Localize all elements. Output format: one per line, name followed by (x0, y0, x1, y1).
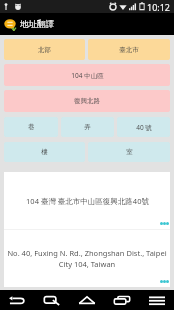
button[interactable]: 北部 (4, 39, 85, 60)
staticText: 復興北路 (74, 97, 100, 105)
button[interactable]: 室 (88, 142, 170, 162)
button[interactable]: 巷 (4, 117, 58, 137)
staticText: 104 臺灣 臺北市中山區復興北路40號 (26, 196, 149, 206)
button[interactable]: 104 中山區 (4, 64, 170, 86)
button[interactable]: No. 40, Fuxing N. Rd., Zhongshan Dist., … (4, 230, 170, 287)
staticText: 北部 (38, 46, 51, 54)
staticText: 弄 (84, 123, 91, 131)
button[interactable]: 104 臺灣 臺北市中山區復興北路40號 (4, 172, 170, 229)
button[interactable]: 復興北路 (4, 90, 170, 112)
staticText: 40 號 (136, 123, 152, 132)
staticText: 地址翻譯 (20, 19, 54, 30)
button[interactable]: Recents (104, 290, 139, 310)
staticText: 104 中山區 (71, 71, 104, 80)
staticText: 10:12 (147, 1, 171, 13)
staticText: 臺北市 (119, 46, 139, 54)
staticText: No. 40, Fuxing N. Rd., Zhongshan Dist., … (7, 248, 167, 269)
button[interactable]: App icon (4, 17, 16, 31)
button[interactable]: Search (34, 290, 69, 310)
button[interactable]: Menu (139, 290, 174, 310)
button[interactable]: Back (0, 290, 34, 310)
button[interactable]: 40 號 (117, 117, 170, 137)
button[interactable]: Home (69, 290, 104, 310)
button[interactable]: 樓 (4, 142, 85, 162)
staticText: 室 (126, 148, 133, 156)
button[interactable]: 弄 (61, 117, 114, 137)
staticText: 樓 (41, 148, 48, 156)
button[interactable]: 臺北市 (88, 39, 170, 60)
staticText: 巷 (28, 123, 35, 131)
